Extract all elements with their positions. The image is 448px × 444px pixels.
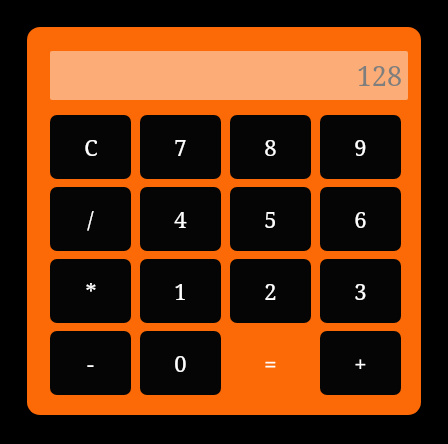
staticText: 1: [174, 276, 187, 306]
staticText: +: [354, 348, 367, 378]
button[interactable]: /: [50, 187, 131, 251]
button[interactable]: 5: [230, 187, 311, 251]
button[interactable]: 7: [140, 115, 221, 179]
button[interactable]: 2: [230, 259, 311, 323]
staticText: 128: [356, 57, 402, 94]
staticText: 4: [174, 204, 187, 234]
button[interactable]: 1: [140, 259, 221, 323]
staticText: 6: [354, 204, 367, 234]
button[interactable]: C: [50, 115, 131, 179]
button[interactable]: -: [50, 331, 131, 395]
staticText: 5: [264, 204, 277, 234]
staticText: 7: [174, 132, 187, 162]
button[interactable]: 8: [230, 115, 311, 179]
staticText: C: [84, 132, 98, 162]
staticText: /: [87, 204, 94, 234]
staticText: 8: [264, 132, 277, 162]
button[interactable]: 6: [320, 187, 401, 251]
staticText: *: [85, 276, 97, 306]
button[interactable]: 128: [50, 51, 408, 100]
button[interactable]: +: [320, 331, 401, 395]
staticText: 9: [354, 132, 367, 162]
button[interactable]: =: [230, 331, 311, 395]
button[interactable]: 9: [320, 115, 401, 179]
button[interactable]: *: [50, 259, 131, 323]
staticText: 3: [354, 276, 367, 306]
button[interactable]: 0: [140, 331, 221, 395]
staticText: =: [264, 348, 277, 378]
button[interactable]: 3: [320, 259, 401, 323]
staticText: 2: [264, 276, 277, 306]
staticText: -: [87, 348, 94, 378]
button[interactable]: 4: [140, 187, 221, 251]
staticText: 0: [174, 348, 187, 378]
